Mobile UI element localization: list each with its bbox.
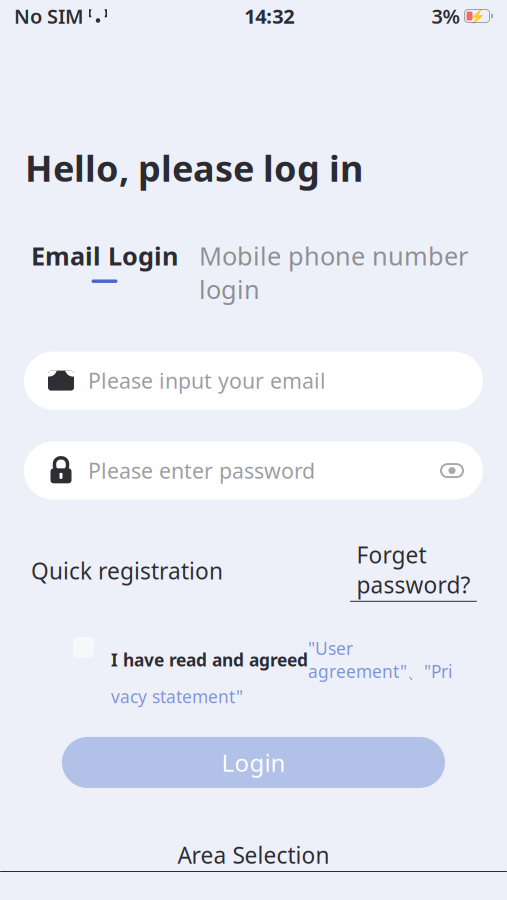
staticText: No SIM: [14, 3, 84, 29]
staticText: Area Selection: [177, 840, 329, 870]
button[interactable]: Quick registration: [31, 556, 223, 586]
button[interactable]: I have read and agreed: [94, 637, 452, 708]
button[interactable]: Email Login: [31, 239, 178, 283]
staticText: vacy statement": [111, 685, 243, 708]
staticText: Hello, please log in: [25, 144, 363, 192]
button[interactable]: Show password: [431, 445, 473, 497]
staticText: "User agreement"、"Pri: [308, 637, 452, 683]
staticText: Please input your email: [88, 366, 326, 395]
staticText: I have read and agreed: [111, 648, 308, 671]
staticText: Login: [221, 746, 285, 778]
button[interactable]: Area Selection: [0, 840, 507, 872]
button[interactable]: Login: [62, 737, 445, 788]
staticText: Quick registration: [31, 556, 223, 586]
staticText: Mobile phone number login: [199, 239, 468, 306]
staticText: 14:32: [244, 3, 294, 29]
staticText: Email Login: [31, 239, 178, 272]
button[interactable]: Mobile phone number login: [199, 239, 468, 317]
staticText: 3%: [431, 3, 460, 29]
staticText: ⚡: [468, 8, 485, 24]
button[interactable]: Forget password?: [350, 540, 477, 602]
staticText: Forget password?: [356, 540, 470, 600]
staticText: Please enter password: [88, 456, 315, 485]
